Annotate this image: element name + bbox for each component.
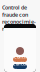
staticText: Control de fraude con reconocimiento fac…: [2, 4, 36, 32]
button[interactable]: Continuar: [13, 57, 27, 62]
staticText: Cancelar: [13, 61, 27, 72]
staticText: Continuar: [14, 54, 26, 65]
button[interactable]: Cancelar: [13, 64, 27, 69]
